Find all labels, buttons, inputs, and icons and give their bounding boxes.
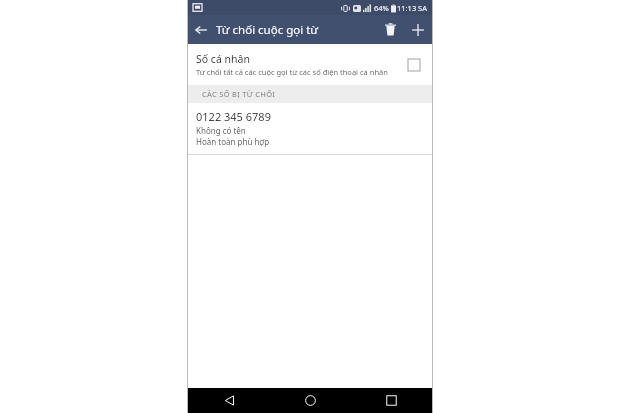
button[interactable]: Add (404, 15, 432, 44)
staticText: 64% (374, 3, 389, 13)
staticText: Số cá nhân (196, 52, 250, 66)
staticText: CÁC SỐ BỊ TỪ CHỐI (202, 89, 276, 99)
staticText: 11:13 SA (397, 3, 428, 13)
staticText: 0122 345 6789 (196, 109, 271, 124)
staticText: Không có tên (196, 125, 246, 136)
button[interactable]: Back (188, 388, 270, 413)
button[interactable]: Reject personal numbers (403, 54, 425, 76)
button[interactable]: Số cá nhân (188, 44, 432, 85)
button[interactable]: Back (188, 15, 214, 44)
button[interactable]: Home (270, 388, 351, 413)
button[interactable]: Delete (376, 15, 404, 44)
staticText: Từ chối tất cả các cuộc gọi từ các số đi… (196, 67, 388, 77)
button[interactable]: 0122 345 6789 (188, 103, 432, 154)
staticText: Từ chối cuộc gọi từ (216, 22, 319, 38)
staticText: Hoàn toàn phù hợp (196, 136, 270, 147)
button[interactable]: Recent apps (351, 388, 432, 413)
